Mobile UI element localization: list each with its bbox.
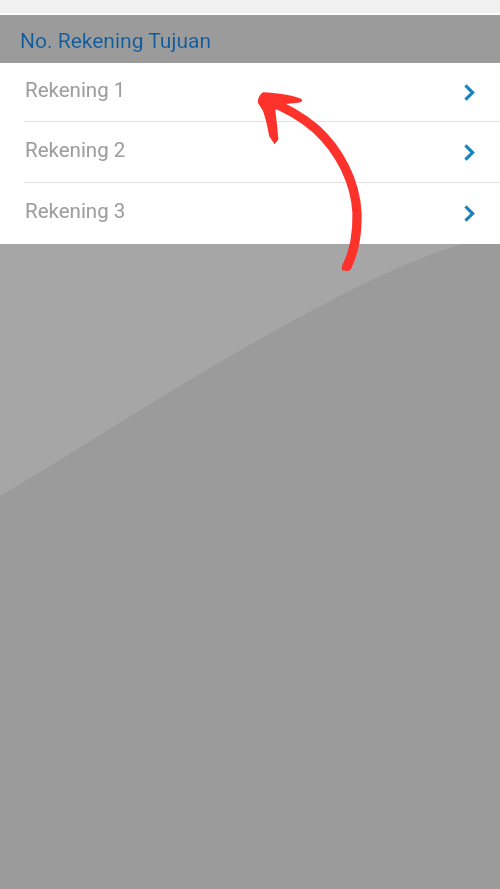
staticText: No. Rekening Tujuan: [20, 29, 211, 54]
other: Pilih Rekening 1: [440, 63, 500, 122]
other: Pilih Rekening 2: [440, 122, 500, 183]
staticText: Rekening 3: [25, 199, 126, 223]
button[interactable]: Rekening 3: [0, 183, 500, 244]
other: Pilih Rekening 3: [440, 183, 500, 244]
button[interactable]: Rekening 1: [0, 63, 500, 122]
staticText: Rekening 2: [25, 138, 126, 162]
button[interactable]: Rekening 2: [0, 122, 500, 183]
staticText: Rekening 1: [25, 78, 126, 102]
